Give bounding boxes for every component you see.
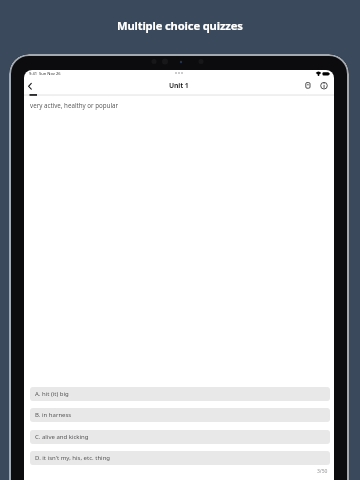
staticText: A. hit (it) big — [35, 390, 69, 398]
staticText: 3/50 — [317, 468, 328, 475]
staticText: Multiple choice quizzes — [117, 18, 243, 33]
button[interactable]: C. alive and kicking — [30, 430, 330, 444]
button[interactable]: A. hit (it) big — [30, 387, 330, 401]
staticText: 9:41 Sun Nov 26 — [29, 71, 61, 76]
button[interactable] — [25, 80, 37, 92]
button[interactable] — [303, 80, 314, 91]
staticText: C. alive and kicking — [35, 433, 89, 441]
staticText: B. in harness — [35, 411, 72, 419]
staticText: D. it isn't my, his, etc. thing — [35, 454, 111, 462]
staticText: Unit 1 — [169, 81, 189, 90]
button[interactable]: B. in harness — [30, 408, 330, 422]
button[interactable] — [319, 80, 330, 91]
staticText: very active, healthy or popular — [30, 101, 119, 109]
button[interactable]: D. it isn't my, his, etc. thing — [30, 451, 330, 465]
